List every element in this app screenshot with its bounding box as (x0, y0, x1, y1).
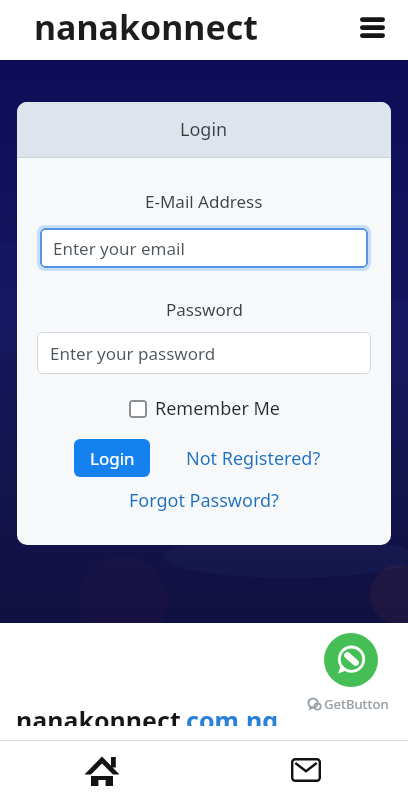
staticText: nanakonnect (16, 703, 181, 726)
staticText: GetButton (324, 695, 389, 713)
staticText: Login (90, 447, 135, 470)
button[interactable] (354, 9, 390, 45)
button[interactable]: Login (74, 439, 150, 477)
staticText: Enter your email (53, 237, 185, 260)
staticText: Enter your password (50, 342, 216, 365)
button[interactable] (324, 633, 378, 687)
staticText: Login (180, 117, 228, 142)
staticText: Remember Me (155, 396, 280, 421)
staticText: com.ng (186, 703, 278, 726)
staticText: Password (166, 298, 243, 321)
button[interactable]: Remember Me (129, 396, 280, 421)
staticText: E-Mail Address (145, 190, 263, 213)
button[interactable] (204, 740, 408, 800)
button[interactable]: Enter your email (37, 225, 371, 271)
button[interactable] (0, 740, 204, 800)
button[interactable]: Enter your password (37, 332, 371, 374)
button[interactable]: Not Registered? (186, 446, 321, 471)
staticText: nanakonnect (34, 4, 259, 50)
button[interactable]: Forgot Password? (129, 488, 279, 513)
button[interactable]: GetButton (307, 695, 389, 713)
